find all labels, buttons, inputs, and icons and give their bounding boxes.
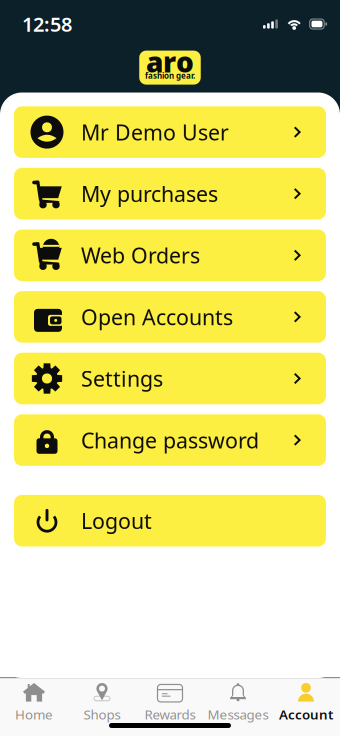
staticText: Web Orders bbox=[81, 241, 200, 269]
button[interactable]: My purchases bbox=[14, 168, 326, 219]
staticText: Rewards bbox=[144, 705, 195, 723]
staticText: Mr Demo User bbox=[81, 118, 229, 146]
button[interactable]: Shops bbox=[68, 686, 136, 720]
button[interactable]: Open Accounts bbox=[14, 291, 326, 343]
button[interactable]: Rewards bbox=[136, 686, 204, 720]
button[interactable]: Web Orders bbox=[14, 229, 326, 281]
staticText: Messages bbox=[207, 705, 268, 723]
button[interactable]: Mr Demo User bbox=[14, 106, 326, 158]
button[interactable]: Logout bbox=[14, 495, 326, 546]
button[interactable]: Change password bbox=[14, 414, 326, 466]
staticText: 12:58 bbox=[22, 11, 72, 37]
staticText: Account bbox=[279, 705, 333, 723]
button[interactable]: Settings bbox=[14, 353, 326, 404]
button[interactable]: Home bbox=[0, 686, 68, 720]
staticText: aro bbox=[146, 43, 194, 80]
button[interactable]: Messages bbox=[204, 686, 272, 720]
staticText: fashion gear. bbox=[145, 70, 195, 81]
staticText: Open Accounts bbox=[81, 303, 233, 331]
staticText: Change password bbox=[81, 426, 259, 454]
staticText: Settings bbox=[81, 364, 163, 393]
staticText: Logout bbox=[81, 506, 152, 535]
staticText: My purchases bbox=[81, 179, 218, 208]
button[interactable]: Account bbox=[272, 686, 340, 720]
staticText: Home bbox=[15, 705, 53, 723]
staticText: Shops bbox=[83, 705, 120, 723]
